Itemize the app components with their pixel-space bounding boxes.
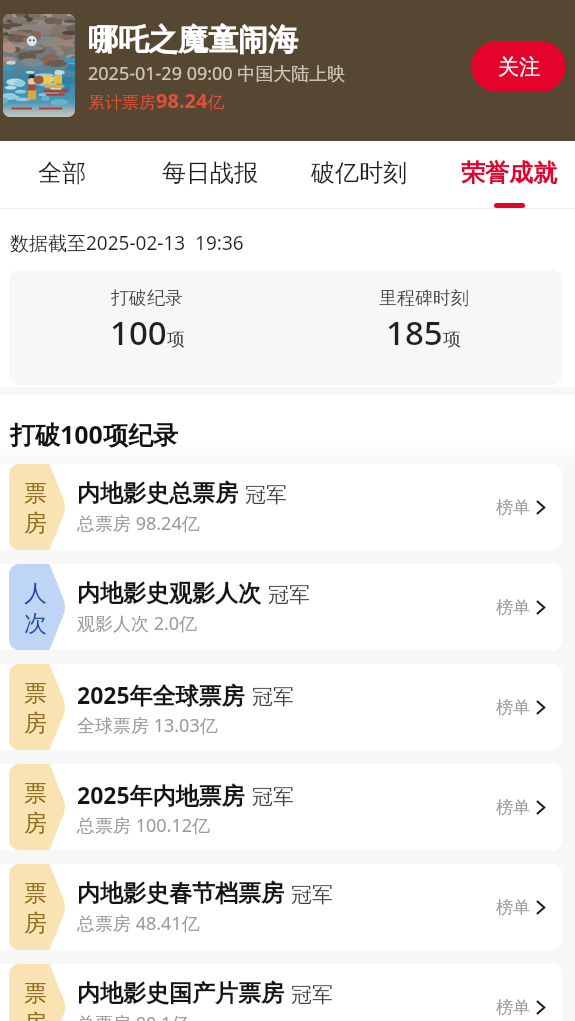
staticText: 内地影史总票房 (77, 479, 238, 508)
staticText: 全球票房 13.03亿 (77, 713, 218, 738)
staticText: 榜单 (496, 797, 530, 818)
staticText: 总票房 98.24亿 (77, 511, 200, 536)
staticText: 关注 (498, 54, 540, 80)
staticText: 房 (24, 709, 47, 738)
button[interactable] (0, 464, 562, 550)
staticText: 总票房 80.1亿 (77, 1011, 190, 1021)
staticText: 榜单 (496, 897, 530, 918)
button[interactable] (0, 664, 562, 750)
staticText: 总票房 48.41亿 (77, 911, 200, 936)
button[interactable] (0, 564, 562, 650)
staticText: 累计票房98.24亿 (88, 87, 225, 114)
button[interactable]: 榜单 (490, 664, 550, 750)
staticText: 2025年内地票房 (77, 779, 245, 810)
staticText: 榜单 (496, 497, 530, 518)
staticText: 票 (24, 779, 47, 808)
staticText: 冠军 (245, 482, 287, 508)
staticText: 荣誉成就 (461, 158, 557, 188)
button[interactable]: 破亿时刻 (269, 141, 449, 209)
staticText: 冠军 (268, 582, 310, 608)
staticText: 每日战报 (162, 158, 258, 188)
staticText: 内地影史观影人次 (77, 579, 261, 608)
button[interactable]: 榜单 (490, 864, 550, 950)
staticText: 冠军 (252, 784, 294, 810)
staticText: 票 (24, 679, 47, 708)
button[interactable]: 荣誉成就 (419, 141, 575, 209)
staticText: 榜单 (496, 697, 530, 718)
staticText: 房 (24, 1009, 47, 1021)
button[interactable]: 榜单 (490, 564, 550, 650)
staticText: 冠军 (291, 982, 333, 1008)
staticText: 票 (24, 479, 47, 508)
staticText: 破亿时刻 (311, 158, 407, 188)
button[interactable]: 榜单 (490, 964, 550, 1021)
staticText: 房 (24, 509, 47, 538)
staticText: 总票房 100.12亿 (77, 813, 210, 838)
staticText: 票 (24, 979, 47, 1008)
button[interactable]: 榜单 (490, 464, 550, 550)
button[interactable] (0, 764, 562, 850)
staticText: 冠军 (252, 684, 294, 710)
staticText: 数据截至2025-02-13 19:36 (10, 230, 244, 256)
staticText: 票 (24, 879, 47, 908)
staticText: 房 (24, 809, 47, 838)
staticText: 榜单 (496, 597, 530, 618)
staticText: 内地影史国产片票房 (77, 979, 284, 1008)
staticText: 打破纪录 (111, 287, 183, 310)
staticText: 打破100项纪录 (10, 417, 178, 451)
staticText: 观影人次 2.0亿 (77, 611, 198, 636)
staticText: 哪吒之魔童闹海 (88, 21, 298, 59)
staticText: 2025-01-29 09:00 中国大陆上映 (88, 61, 346, 86)
button[interactable]: 全部 (0, 141, 152, 209)
staticText: 房 (24, 909, 47, 938)
staticText: 2025年全球票房 (77, 679, 245, 710)
staticText: 冠军 (291, 882, 333, 908)
staticText: 100 (110, 310, 167, 355)
button[interactable]: 榜单 (490, 764, 550, 850)
staticText: 人 (24, 579, 47, 608)
staticText: 次 (24, 609, 47, 638)
button[interactable] (0, 864, 562, 950)
staticText: 项 (443, 328, 461, 351)
staticText: 全部 (38, 158, 86, 188)
button[interactable]: 关注 (471, 41, 566, 92)
button[interactable] (0, 964, 562, 1021)
staticText: 榜单 (496, 997, 530, 1018)
staticText: 里程碑时刻 (379, 287, 469, 310)
button[interactable]: 每日战报 (120, 141, 300, 209)
staticText: 内地影史春节档票房 (77, 879, 284, 908)
staticText: 项 (167, 328, 185, 351)
staticText: 185 (386, 310, 443, 355)
